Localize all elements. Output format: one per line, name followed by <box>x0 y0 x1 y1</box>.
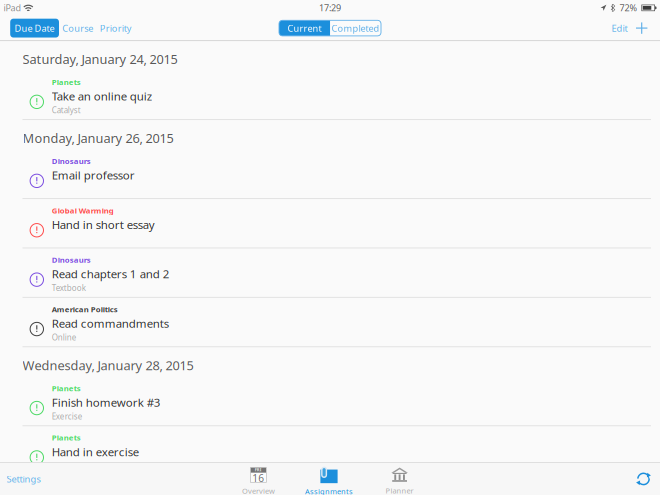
staticText: Dinosaurs <box>52 156 91 166</box>
button[interactable]: 16 <box>223 463 294 495</box>
button[interactable]: Planets <box>0 377 660 425</box>
button[interactable]: Assignments <box>294 463 364 495</box>
staticText: Read commandments <box>52 315 169 331</box>
staticText: Priority <box>100 22 132 34</box>
button[interactable]: Current <box>279 20 330 36</box>
staticText: Hand in exercise <box>52 444 139 459</box>
staticText: Settings <box>6 473 40 485</box>
button[interactable]: Dinosaurs <box>0 150 660 198</box>
staticText: iPad <box>3 2 21 14</box>
staticText: Online <box>52 332 77 343</box>
staticText: Course <box>62 22 93 34</box>
staticText: Planner <box>386 486 414 495</box>
staticText: Read chapters 1 and 2 <box>52 266 170 282</box>
button[interactable]: Settings <box>0 464 40 494</box>
staticText: Completed <box>332 22 380 34</box>
staticText: 17:29 <box>319 2 341 14</box>
staticText: Saturday, January 24, 2015 <box>22 50 177 68</box>
button[interactable]: Planets <box>0 71 660 119</box>
button[interactable]: Course <box>59 19 96 37</box>
button[interactable]: Due Date <box>10 19 59 37</box>
staticText: Exercise <box>52 411 83 422</box>
staticText: Email professor <box>52 167 135 183</box>
button[interactable]: American Politics <box>0 298 660 346</box>
button[interactable]: Add assignment <box>631 18 652 38</box>
staticText: 16 <box>252 471 264 485</box>
staticText: American Politics <box>52 304 118 314</box>
staticText: Planets <box>52 383 81 393</box>
staticText: Current <box>288 22 322 34</box>
staticText: Hand in short essay <box>52 217 155 232</box>
staticText: Planets <box>52 432 81 443</box>
staticText: Dinosaurs <box>52 255 91 265</box>
button[interactable]: Refresh <box>635 464 660 493</box>
button[interactable]: Planner <box>364 463 435 495</box>
staticText: Catalyst <box>52 105 81 116</box>
staticText: Assignments <box>305 486 353 495</box>
staticText: Due Date <box>15 22 55 34</box>
staticText: Edit <box>611 22 627 34</box>
button[interactable]: Planets <box>0 426 660 475</box>
staticText: 72% <box>620 2 638 14</box>
staticText: Wednesday, January 28, 2015 <box>22 356 193 374</box>
button[interactable]: Global Warming <box>0 199 660 247</box>
staticText: Overview <box>242 486 275 495</box>
button[interactable]: Edit <box>607 18 631 38</box>
staticText: Take an online quiz <box>52 88 152 104</box>
staticText: FRI <box>255 467 262 473</box>
button[interactable]: Dinosaurs <box>0 248 660 297</box>
button[interactable]: Priority <box>96 19 135 37</box>
staticText: Finish homework #3 <box>52 394 161 410</box>
staticText: Monday, January 26, 2015 <box>22 129 173 147</box>
staticText: Global Warming <box>52 205 114 216</box>
button[interactable]: Completed <box>330 20 381 36</box>
staticText: Textbook <box>52 282 86 293</box>
staticText: Planets <box>52 77 81 87</box>
